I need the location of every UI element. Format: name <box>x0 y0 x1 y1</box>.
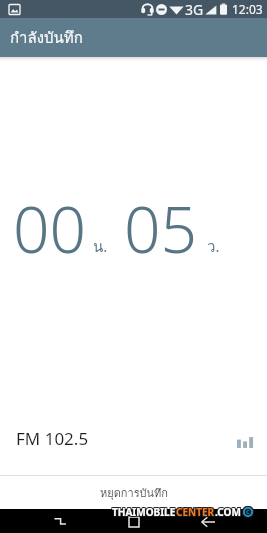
staticText: .COM <box>216 505 242 519</box>
staticText: THAIMOBILE <box>112 506 176 520</box>
staticText: .COM <box>214 504 240 518</box>
staticText: ว. <box>207 235 220 259</box>
staticText: C <box>246 508 250 516</box>
staticText: หยุดการบันทึก <box>100 484 168 501</box>
staticText: กำลังบันทึก <box>10 26 83 50</box>
staticText: .COM <box>215 505 241 519</box>
staticText: 12:03 <box>232 1 263 17</box>
staticText: C <box>247 508 251 516</box>
staticText: THAIMOBILE <box>113 506 177 520</box>
staticText: CENTER <box>175 505 214 519</box>
staticText: THAIMOBILE <box>111 504 175 518</box>
staticText: CENTER <box>177 504 216 518</box>
staticText: CENTER <box>175 506 214 520</box>
staticText: .COM <box>215 504 241 518</box>
staticText: .COM <box>215 506 241 520</box>
staticText: THAIMOBILE <box>111 505 175 519</box>
button[interactable]: Back <box>184 509 232 533</box>
staticText: 00 <box>13 185 87 272</box>
staticText: C <box>247 507 251 515</box>
staticText: C <box>247 509 251 517</box>
staticText: CENTER <box>177 506 216 520</box>
staticText: .COM <box>214 506 240 520</box>
button[interactable]: Home <box>110 509 158 533</box>
staticText: THAIMOBILE <box>111 506 175 520</box>
staticText: CENTER <box>176 504 215 518</box>
staticText: C <box>246 509 250 517</box>
staticText: .COM <box>214 505 240 519</box>
staticText: น. <box>93 235 108 259</box>
staticText: .COM <box>216 504 242 518</box>
staticText: CENTER <box>176 506 215 520</box>
staticText: .COM <box>216 506 242 520</box>
staticText: THAIMOBILE <box>112 505 176 519</box>
staticText: 05 <box>124 185 198 272</box>
staticText: C <box>246 507 250 515</box>
staticText: CENTER <box>177 505 216 519</box>
staticText: THAIMOBILE <box>113 505 177 519</box>
staticText: THAIMOBILE <box>112 504 176 518</box>
staticText: 3G <box>185 0 204 18</box>
staticText: C <box>245 508 249 516</box>
button[interactable]: หยุดการบันทึก <box>0 475 267 509</box>
staticText: FM 102.5 <box>16 427 89 450</box>
staticText: THAIMOBILE <box>113 504 177 518</box>
staticText: C <box>245 507 249 515</box>
staticText: C <box>245 509 249 517</box>
button[interactable]: Recent apps <box>36 509 84 533</box>
staticText: CENTER <box>175 504 214 518</box>
staticText: CENTER <box>176 505 215 519</box>
